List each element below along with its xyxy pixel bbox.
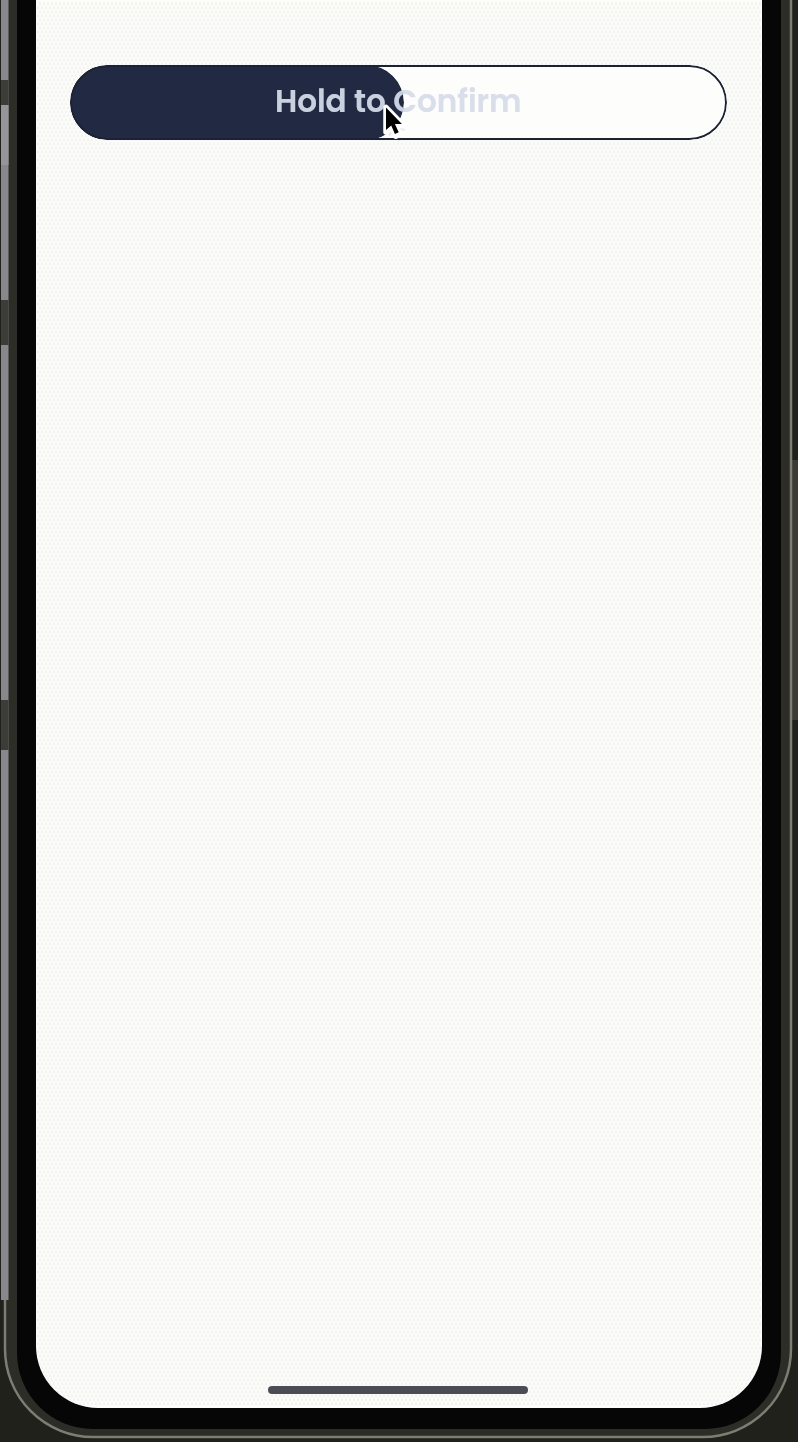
button[interactable]: Hold to Confirm [70, 65, 727, 140]
staticText: Hold to Confirm [275, 79, 522, 122]
staticText: Hold to Confirm [275, 79, 522, 122]
